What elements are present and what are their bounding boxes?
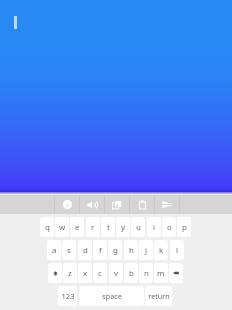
staticText: m [157,268,165,279]
button[interactable]: Sound [80,195,104,214]
staticText: y [121,222,126,233]
button[interactable]: Send [155,195,179,214]
button[interactable]: Emoji [55,195,79,214]
staticText: x [83,268,88,279]
staticText: s [67,245,71,256]
button[interactable]: t [101,217,115,237]
staticText: o [167,222,172,233]
staticText: j [145,245,148,256]
button[interactable]: n [139,263,153,283]
staticText: k [159,245,164,256]
staticText: return [148,291,170,301]
button[interactable]: b [124,263,138,283]
button[interactable]: y [116,217,130,237]
button[interactable]: g [108,240,122,260]
button[interactable]: l [170,240,184,260]
button[interactable]: c [93,263,107,283]
staticText: p [182,222,187,233]
staticText: d [83,245,88,256]
button[interactable]: x [78,263,92,283]
staticText: q [45,222,50,233]
button[interactable]: return [145,286,172,306]
staticText: f [99,245,102,256]
button[interactable]: k [154,240,168,260]
button[interactable]: 123 [58,286,77,306]
button[interactable]: m [154,263,168,283]
button[interactable]: a [47,240,61,260]
staticText: n [144,268,149,279]
button[interactable]: Shift [48,263,62,283]
button[interactable]: j [139,240,153,260]
staticText: w [59,222,66,233]
button[interactable]: p [177,217,191,237]
staticText: l [176,245,179,256]
button[interactable]: r [86,217,100,237]
staticText: t [107,222,110,233]
button[interactable]: q [40,217,54,237]
staticText: g [113,245,118,256]
button[interactable]: space [79,286,144,306]
staticText: v [114,268,119,279]
staticText: u [136,222,141,233]
staticText: h [129,245,134,256]
staticText: c [98,268,102,279]
button[interactable]: h [124,240,138,260]
button[interactable]: z [63,263,77,283]
staticText: space [102,291,122,301]
button[interactable]: v [109,263,123,283]
button[interactable]: i [147,217,161,237]
button[interactable]: e [70,217,84,237]
button[interactable]: Backspace [169,263,183,283]
button[interactable]: w [55,217,69,237]
button[interactable]: s [62,240,76,260]
staticText: i [153,222,156,233]
staticText: 123 [61,291,75,301]
button[interactable]: Copy [105,195,129,214]
staticText: e [75,222,80,233]
button[interactable]: o [162,217,176,237]
button[interactable]: u [131,217,145,237]
button[interactable]: f [93,240,107,260]
staticText: z [68,268,72,279]
staticText: r [91,222,95,233]
staticText: a [52,245,57,256]
staticText: b [129,268,134,279]
button[interactable]: Paste [130,195,154,214]
button[interactable]: d [78,240,92,260]
